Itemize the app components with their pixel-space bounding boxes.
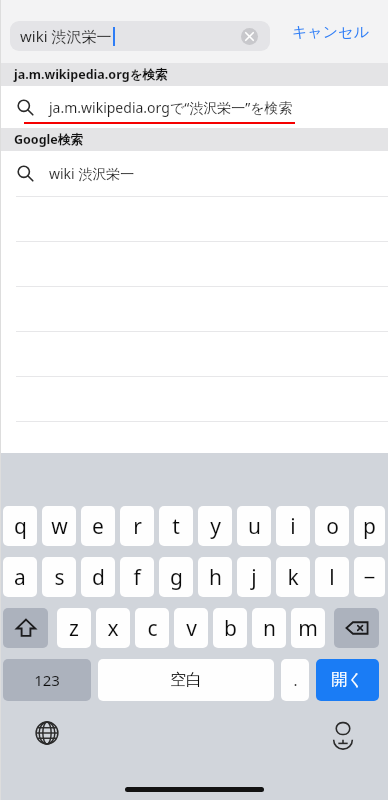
button[interactable]: Change keyboard language — [30, 716, 64, 750]
button[interactable]: 開く — [316, 659, 379, 701]
button[interactable]: i — [276, 506, 310, 546]
button[interactable]: ja.m.wikipedia.orgで“渋沢栄一”を検索 — [0, 86, 388, 128]
button[interactable]: . — [281, 659, 309, 701]
staticText: j — [251, 563, 257, 592]
staticText: p — [363, 512, 376, 541]
button[interactable]: y — [198, 506, 232, 546]
staticText: v — [186, 614, 197, 643]
staticText: 123 — [34, 670, 60, 690]
staticText: g — [170, 563, 183, 592]
button[interactable]: d — [81, 557, 115, 597]
button[interactable]: wiki 渋沢栄一 — [10, 21, 270, 51]
button[interactable]: z — [57, 608, 91, 648]
staticText: r — [133, 512, 142, 541]
staticText: y — [210, 512, 221, 541]
staticText: w — [51, 512, 68, 541]
button[interactable]: x — [96, 608, 130, 648]
button[interactable]: 空白 — [98, 659, 274, 701]
button[interactable]: k — [276, 557, 310, 597]
button[interactable]: − — [354, 557, 385, 597]
staticText: wiki 渋沢栄一 — [49, 164, 135, 183]
button[interactable]: Backspace — [334, 608, 379, 648]
staticText: t — [172, 512, 180, 541]
button[interactable]: Voice input — [326, 716, 360, 750]
staticText: a — [14, 563, 26, 592]
button[interactable]: r — [120, 506, 154, 546]
staticText: c — [147, 614, 158, 643]
staticText: ja.m.wikipedia.orgで“渋沢栄一”を検索 — [49, 98, 293, 117]
staticText: n — [263, 614, 276, 643]
button[interactable]: h — [198, 557, 232, 597]
button[interactable]: m — [291, 608, 325, 648]
staticText: キャンセル — [292, 23, 369, 42]
staticText: ja.m.wikipedia.orgを検索 — [14, 66, 168, 83]
staticText: . — [293, 670, 298, 690]
staticText: l — [329, 563, 335, 592]
staticText: k — [287, 563, 299, 592]
staticText: d — [92, 563, 105, 592]
button[interactable]: g — [159, 557, 193, 597]
staticText: − — [363, 563, 376, 592]
staticText: Google検索 — [14, 131, 83, 148]
staticText: m — [298, 614, 318, 643]
button[interactable]: Shift — [3, 608, 48, 648]
button[interactable]: t — [159, 506, 193, 546]
button[interactable]: b — [213, 608, 247, 648]
button[interactable]: e — [81, 506, 115, 546]
button[interactable]: 123 — [3, 659, 91, 701]
button[interactable]: a — [3, 557, 37, 597]
staticText: 開く — [331, 670, 364, 690]
button[interactable]: q — [3, 506, 37, 546]
button[interactable]: u — [237, 506, 271, 546]
button[interactable]: s — [42, 557, 76, 597]
button[interactable]: wiki 渋沢栄一 — [0, 151, 388, 196]
button[interactable]: j — [237, 557, 271, 597]
button[interactable]: o — [315, 506, 349, 546]
staticText: q — [14, 512, 27, 541]
button[interactable]: Clear text — [241, 28, 258, 45]
button[interactable]: v — [174, 608, 208, 648]
button[interactable]: n — [252, 608, 286, 648]
button[interactable]: f — [120, 557, 154, 597]
staticText: u — [248, 512, 261, 541]
button[interactable]: p — [354, 506, 385, 546]
staticText: 空白 — [170, 670, 202, 690]
staticText: e — [92, 512, 104, 541]
staticText: wiki 渋沢栄一 — [20, 26, 112, 46]
button[interactable]: c — [135, 608, 169, 648]
staticText: h — [209, 563, 222, 592]
staticText: x — [107, 614, 119, 643]
staticText: f — [133, 563, 141, 592]
button[interactable]: l — [315, 557, 349, 597]
staticText: i — [290, 512, 296, 541]
button[interactable]: w — [42, 506, 76, 546]
button[interactable]: キャンセル — [276, 10, 384, 54]
staticText: b — [224, 614, 237, 643]
staticText: s — [54, 563, 65, 592]
staticText: z — [69, 614, 79, 643]
staticText: o — [326, 512, 339, 541]
